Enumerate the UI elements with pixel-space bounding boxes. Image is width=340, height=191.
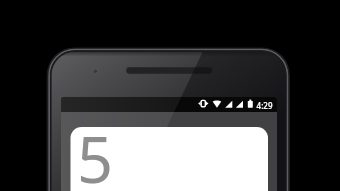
button[interactable]: Phone showing app screen	[0, 0, 340, 191]
